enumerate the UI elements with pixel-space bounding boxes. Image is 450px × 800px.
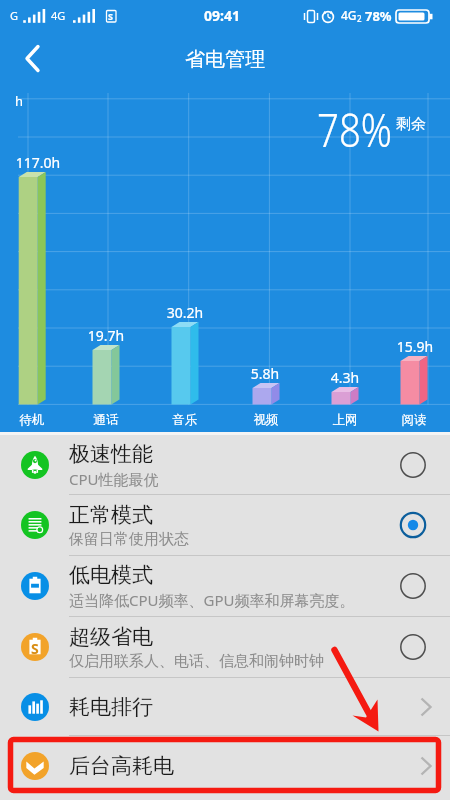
staticText: 低电模式 bbox=[69, 562, 153, 588]
button[interactable]: Back bbox=[6, 32, 59, 85]
staticText: G bbox=[10, 8, 19, 23]
staticText: 上网 bbox=[305, 412, 385, 428]
staticText: S bbox=[31, 639, 39, 658]
staticText: 省电管理 bbox=[185, 47, 265, 72]
button[interactable]: S bbox=[0, 617, 450, 677]
button[interactable]: 耗电排行 bbox=[0, 678, 450, 735]
staticText: 保留日常使用状态 bbox=[69, 530, 189, 549]
staticText: 5.8h bbox=[225, 364, 305, 383]
button[interactable]: 低电模式 bbox=[0, 556, 450, 616]
staticText: 音乐 bbox=[145, 412, 225, 428]
staticText: 4G bbox=[51, 8, 66, 23]
staticText: 适当降低CPU频率、GPU频率和屏幕亮度。 bbox=[69, 590, 355, 610]
staticText: 2 bbox=[357, 13, 362, 24]
staticText: 4G bbox=[341, 7, 357, 23]
staticText: 超级省电 bbox=[69, 624, 153, 650]
staticText: 阅读 bbox=[374, 412, 450, 428]
button[interactable]: 后台高耗电 bbox=[0, 736, 450, 795]
staticText: h bbox=[15, 92, 24, 110]
staticText: 后台高耗电 bbox=[69, 753, 402, 779]
staticText: 78% bbox=[365, 7, 392, 25]
staticText: 09:41 bbox=[204, 6, 240, 25]
staticText: 正常模式 bbox=[69, 502, 153, 528]
staticText: 19.7h bbox=[66, 326, 146, 345]
staticText: 剩余 bbox=[396, 115, 426, 134]
staticText: 4.3h bbox=[305, 368, 385, 387]
staticText: CPU性能最优 bbox=[69, 469, 159, 489]
staticText: 极速性能 bbox=[69, 441, 153, 467]
staticText: S bbox=[108, 10, 113, 22]
button[interactable]: 极速性能 bbox=[0, 435, 450, 494]
staticText: 30.2h bbox=[145, 303, 225, 322]
staticText: 待机 bbox=[0, 412, 72, 428]
staticText: 117.0h bbox=[0, 153, 78, 172]
staticText: 78% bbox=[317, 98, 392, 161]
button[interactable]: 正常模式 bbox=[0, 495, 450, 555]
staticText: 视频 bbox=[226, 412, 306, 428]
staticText: 通话 bbox=[66, 412, 146, 428]
staticText: 耗电排行 bbox=[69, 694, 402, 720]
staticText: 15.9h bbox=[375, 337, 450, 356]
staticText: 仅启用联系人、电话、信息和闹钟时钟 bbox=[69, 652, 324, 671]
